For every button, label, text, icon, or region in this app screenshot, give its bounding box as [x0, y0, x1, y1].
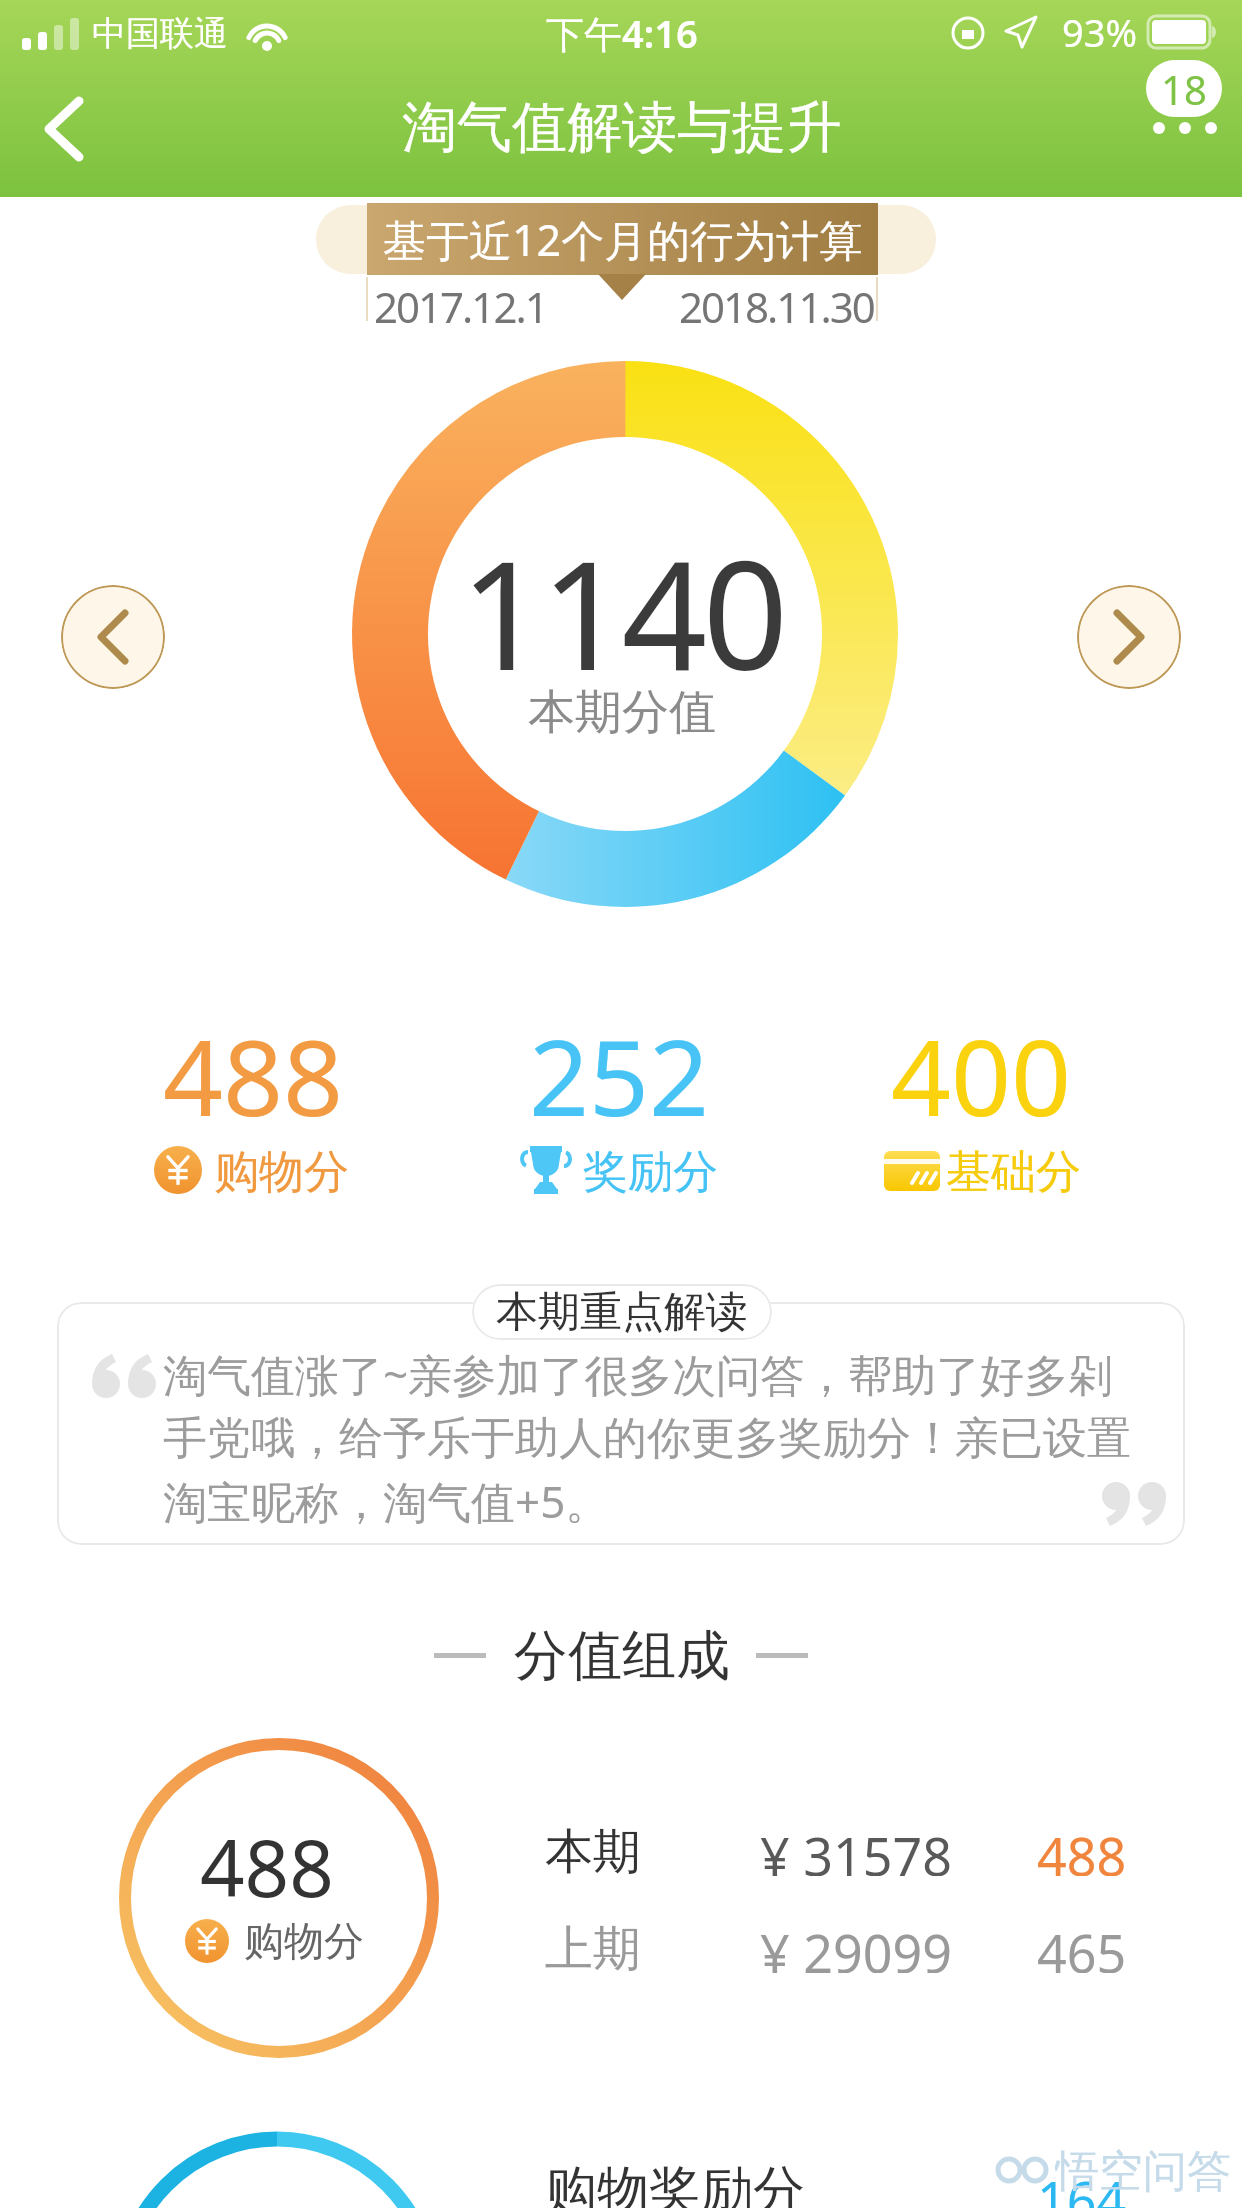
staticText: 465: [1037, 1917, 1127, 1973]
staticText: 基于近12个月的行为计算: [383, 210, 863, 269]
staticText: 淘气值涨了~亲参加了很多次问答，帮助了好多剁 手党哦，给予乐于助人的你更多奖励分…: [163, 1344, 1131, 1531]
staticText: 下午4:16: [546, 7, 698, 59]
staticText: 基础分: [946, 1144, 1081, 1196]
button[interactable]: [1146, 119, 1224, 137]
staticText: 18: [1161, 62, 1207, 116]
staticText: 488: [200, 1814, 334, 1920]
staticText: ¥ 31578: [760, 1820, 952, 1876]
button[interactable]: 18: [1146, 60, 1222, 117]
staticText: 本期分值: [528, 683, 716, 742]
button[interactable]: [1077, 585, 1181, 689]
staticText: 购物分: [214, 1144, 349, 1196]
staticText: 购物分: [244, 1916, 364, 1966]
staticText: 252: [529, 1004, 710, 1147]
staticText: 奖励分: [583, 1144, 718, 1196]
staticText: 分值组成: [514, 1622, 730, 1690]
staticText: 1140: [460, 510, 784, 714]
staticText: 中国联通: [92, 12, 228, 55]
staticText: 本期重点解读: [496, 1286, 748, 1339]
staticText: 164: [1037, 2164, 1127, 2208]
staticText: 2017.12.1: [374, 278, 547, 324]
button[interactable]: [61, 585, 165, 689]
staticText: 488: [1037, 1820, 1127, 1876]
staticText: 400: [891, 1004, 1072, 1147]
staticText: 488: [163, 1004, 344, 1147]
staticText: 悟空问答: [1055, 2144, 1231, 2194]
staticText: ¥ 29099: [760, 1917, 952, 1973]
button[interactable]: [20, 90, 110, 170]
staticText: 淘气值解读与提升: [402, 93, 842, 162]
staticText: 本期: [545, 1822, 641, 1874]
staticText: 93%: [1062, 6, 1138, 58]
staticText: 购物奖励分: [545, 2158, 805, 2208]
staticText: 上期: [545, 1919, 641, 1971]
staticText: 2018.11.30: [679, 278, 874, 324]
